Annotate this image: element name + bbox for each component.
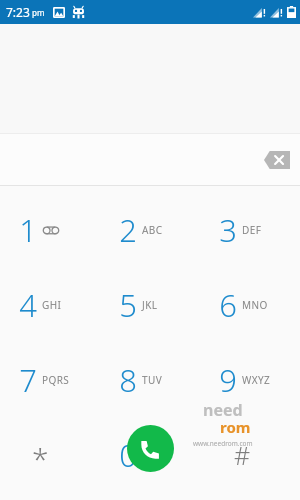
staticText: need [203,399,243,421]
staticText: 8 [119,359,137,401]
staticText: 6 [219,284,237,326]
button[interactable]: Backspace [262,147,292,173]
button[interactable]: 2 [100,193,200,267]
button[interactable]: 3 [200,193,300,267]
button[interactable]: 8 [100,342,200,417]
staticText: # [234,438,251,472]
staticText: 7:23 [6,4,30,20]
button[interactable]: # [200,417,300,492]
staticText: PQRS [42,373,70,387]
button[interactable]: * [0,417,100,492]
staticText: + [142,446,150,465]
staticText: 0 [119,434,137,476]
staticText: GHI [42,298,62,312]
button[interactable]: 0 [100,417,200,492]
staticText: DEF [242,223,262,237]
staticText: 2 [119,209,137,251]
staticText: TUV [142,373,163,387]
staticText: rom [220,417,251,437]
staticText: pm [32,7,45,18]
staticText: JKL [142,298,158,312]
staticText: * [32,438,49,479]
button[interactable]: 1 [0,193,100,267]
staticText: 4 [19,284,37,326]
button[interactable]: 6 [200,267,300,342]
staticText: 1 [19,209,37,251]
staticText: MNO [242,298,268,312]
staticText: www.needrom.com [193,439,253,448]
staticText: 7 [19,359,37,401]
staticText: ABC [142,223,163,237]
button[interactable]: 4 [0,267,100,342]
staticText: WXYZ [242,373,271,387]
staticText: 5 [119,284,137,326]
button[interactable]: Call [127,425,174,472]
staticText: 3 [219,209,237,251]
button[interactable]: 7 [0,342,100,417]
button[interactable]: 9 [200,342,300,417]
button[interactable]: 5 [100,267,200,342]
staticText: 9 [219,359,237,401]
